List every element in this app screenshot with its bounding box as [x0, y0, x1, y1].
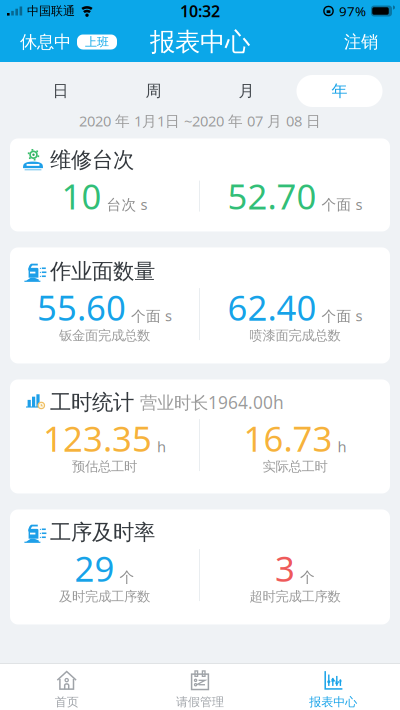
- staticText: 工时统计: [50, 389, 134, 415]
- staticText: 休息中: [20, 31, 71, 53]
- staticText: h: [337, 437, 346, 456]
- staticText: 工序及时率: [50, 519, 155, 545]
- staticText: 报表中心: [309, 694, 357, 709]
- button[interactable]: 月: [200, 75, 293, 107]
- button[interactable]: 周: [107, 75, 200, 107]
- staticText: 预估总工时: [72, 458, 137, 475]
- staticText: 55.60: [37, 284, 126, 330]
- button[interactable]: 年: [293, 75, 386, 107]
- staticText: 3: [275, 545, 295, 591]
- staticText: 个: [300, 568, 315, 586]
- staticText: h: [157, 437, 166, 456]
- staticText: 营业时长1964.00h: [140, 391, 284, 414]
- staticText: 作业面数量: [50, 258, 155, 284]
- staticText: 年: [331, 81, 347, 101]
- staticText: 台次 s: [106, 195, 147, 214]
- staticText: 钣金面完成总数: [59, 327, 150, 344]
- staticText: 超时完成工序数: [249, 588, 340, 605]
- staticText: 请假管理: [176, 694, 224, 709]
- staticText: 维修台次: [50, 147, 134, 173]
- staticText: 注销: [344, 31, 378, 53]
- staticText: 实际总工时: [262, 458, 327, 475]
- button[interactable]: 首页: [0, 664, 133, 710]
- staticText: 报表中心: [150, 26, 250, 57]
- button[interactable]: 日: [14, 75, 107, 107]
- staticText: 29: [74, 545, 114, 591]
- staticText: 首页: [55, 694, 79, 709]
- staticText: 月: [238, 81, 254, 101]
- staticText: 2020 年 1月1日 ~2020 年 07 月 08 日: [79, 111, 321, 130]
- staticText: 上班: [85, 35, 109, 49]
- staticText: 个: [119, 568, 134, 586]
- button[interactable]: 报表中心: [267, 664, 400, 710]
- staticText: 52.70: [227, 173, 316, 219]
- button[interactable]: 请假管理: [133, 664, 267, 710]
- staticText: 62.40: [227, 284, 316, 330]
- staticText: 周: [145, 81, 161, 101]
- staticText: 10:32: [180, 0, 220, 22]
- staticText: 喷漆面完成总数: [249, 327, 340, 344]
- staticText: 123.35: [43, 415, 152, 461]
- staticText: 个面 s: [321, 195, 362, 214]
- staticText: 日: [52, 81, 68, 101]
- staticText: 97%: [339, 2, 366, 20]
- staticText: 16.73: [243, 415, 332, 461]
- staticText: 个面 s: [321, 306, 362, 325]
- button[interactable]: 注销: [344, 31, 400, 53]
- button[interactable]: 上班: [77, 34, 117, 49]
- staticText: 及时完成工序数: [59, 588, 150, 605]
- staticText: 个面 s: [131, 306, 172, 325]
- staticText: 中国联通: [27, 4, 75, 18]
- staticText: 10: [61, 173, 101, 219]
